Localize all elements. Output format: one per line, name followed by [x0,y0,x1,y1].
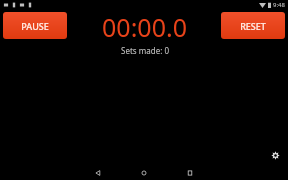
button[interactable]: Back [86,165,110,180]
button[interactable]: Settings [267,147,283,163]
button[interactable]: Recent apps [178,165,202,180]
staticText: 9:48 [273,1,285,9]
staticText: Sets made: 0 [121,45,169,56]
button[interactable]: PAUSE [3,12,67,39]
staticText: PAUSE [21,20,49,32]
staticText: RESET [240,20,266,32]
button[interactable]: Home [132,165,156,180]
staticText: 00:00.0 [102,10,187,44]
button[interactable]: RESET [221,12,285,39]
